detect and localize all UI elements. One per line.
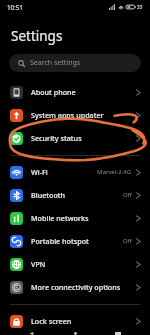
button[interactable]: Security status (0, 127, 150, 149)
staticText: Settings (11, 27, 63, 45)
staticText: Lock screen (31, 316, 135, 326)
button[interactable]: System apps updater (0, 104, 150, 126)
button[interactable]: Recent apps (107, 332, 129, 335)
staticText: 10:51 (7, 3, 23, 11)
button[interactable]: Mobile networks (0, 207, 150, 229)
staticText: Off (123, 191, 132, 199)
button[interactable]: About phone (0, 81, 150, 103)
staticText: Mobile networks (31, 213, 135, 223)
staticText: Search settings (30, 58, 81, 68)
button[interactable]: Portable hotspot (0, 230, 150, 252)
button[interactable]: VPN (0, 253, 150, 275)
button[interactable]: Search settings (9, 54, 141, 72)
staticText: More connectivity options (31, 282, 135, 292)
staticText: VPN (31, 259, 135, 269)
staticText: Portable hotspot (31, 236, 123, 246)
staticText: Wi-Fi (31, 167, 97, 177)
button[interactable]: Back (21, 332, 43, 335)
button[interactable]: Home (64, 332, 86, 335)
staticText: Bluetooth (31, 190, 123, 200)
staticText: Marvel-2.4G (97, 168, 132, 176)
button[interactable]: Bluetooth (0, 184, 150, 206)
staticText: Security status (31, 133, 135, 143)
staticText: Off (123, 237, 132, 245)
staticText: 33 (137, 4, 143, 10)
staticText: System apps updater (31, 110, 135, 120)
button[interactable]: Lock screen (0, 310, 150, 332)
button[interactable]: Wi-Fi (0, 161, 150, 183)
button[interactable]: More connectivity options (0, 276, 150, 298)
staticText: About phone (31, 87, 135, 97)
